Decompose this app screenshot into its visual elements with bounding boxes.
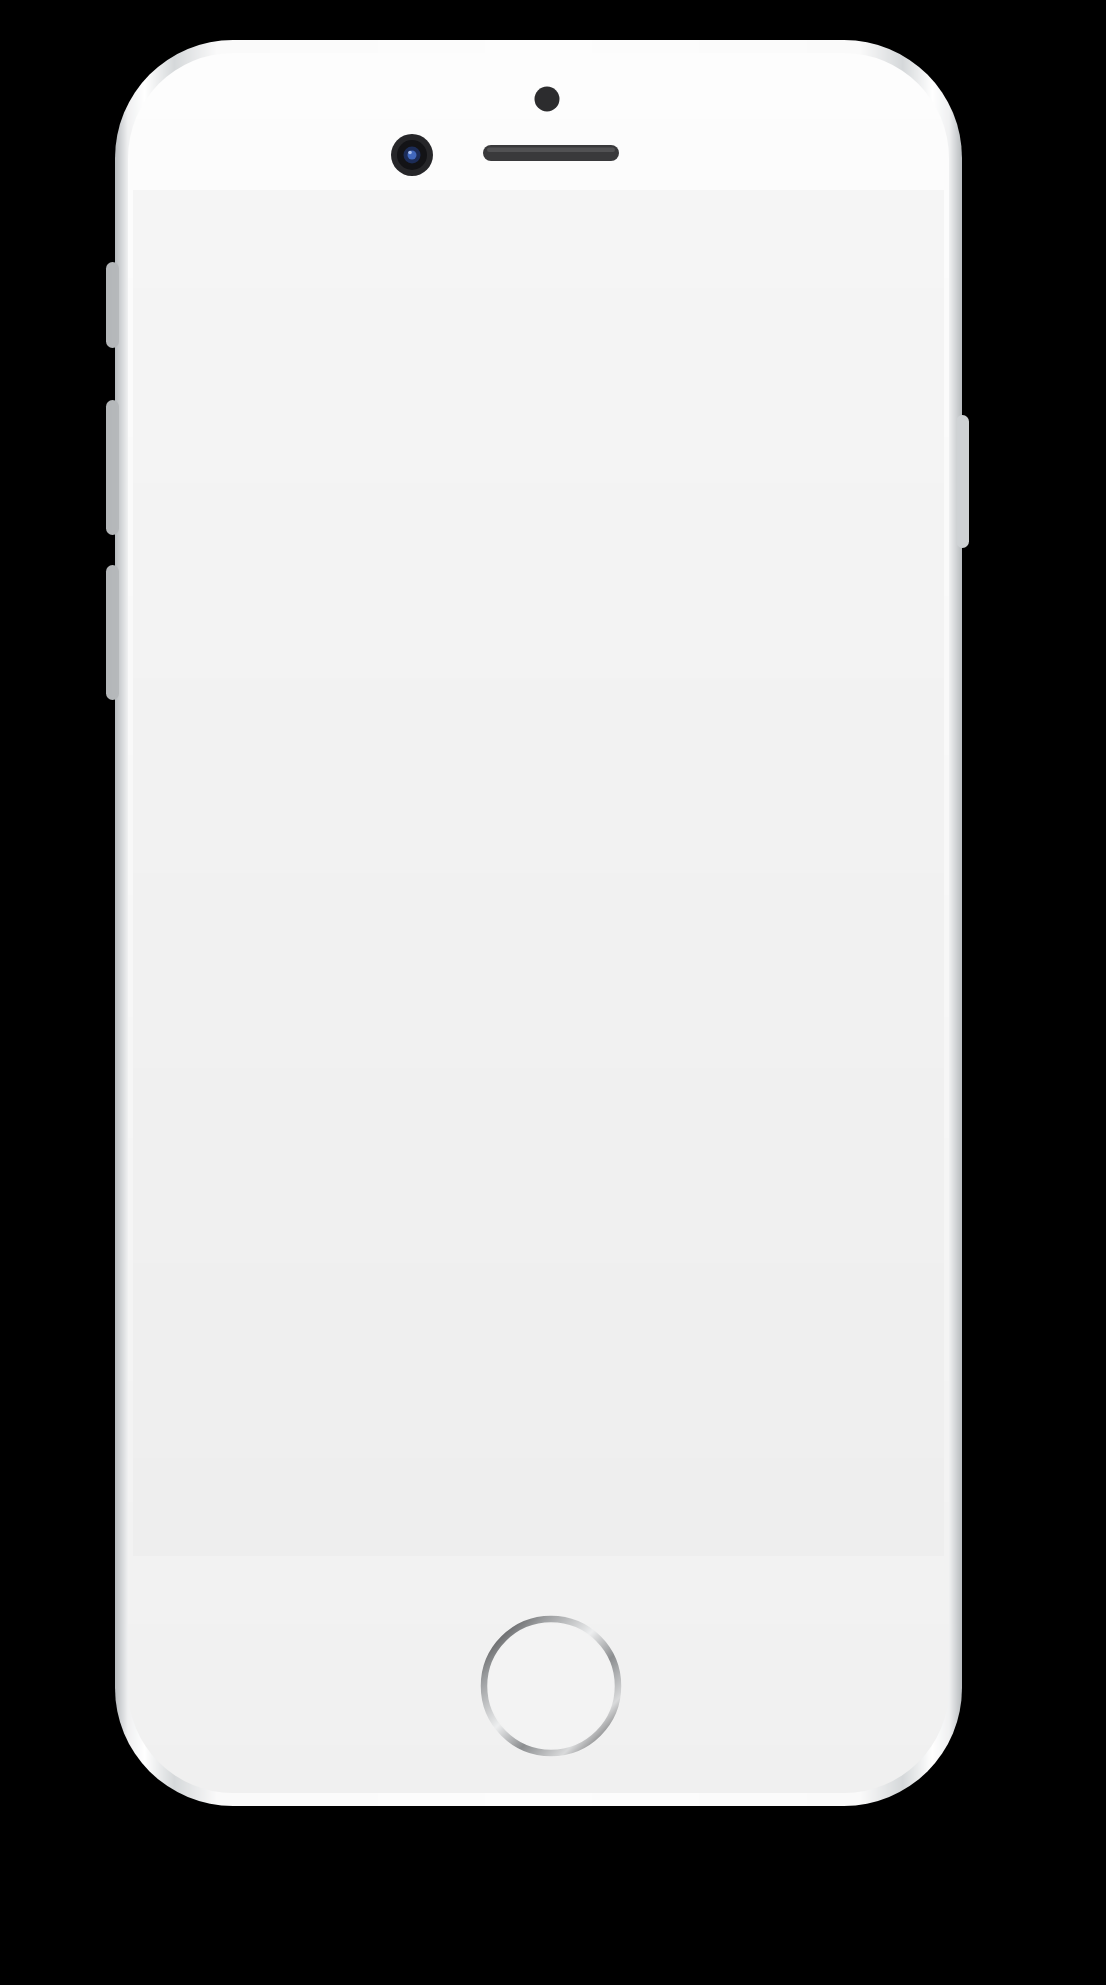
button[interactable]: White smartphone device mockup with blan… — [0, 0, 1106, 1985]
